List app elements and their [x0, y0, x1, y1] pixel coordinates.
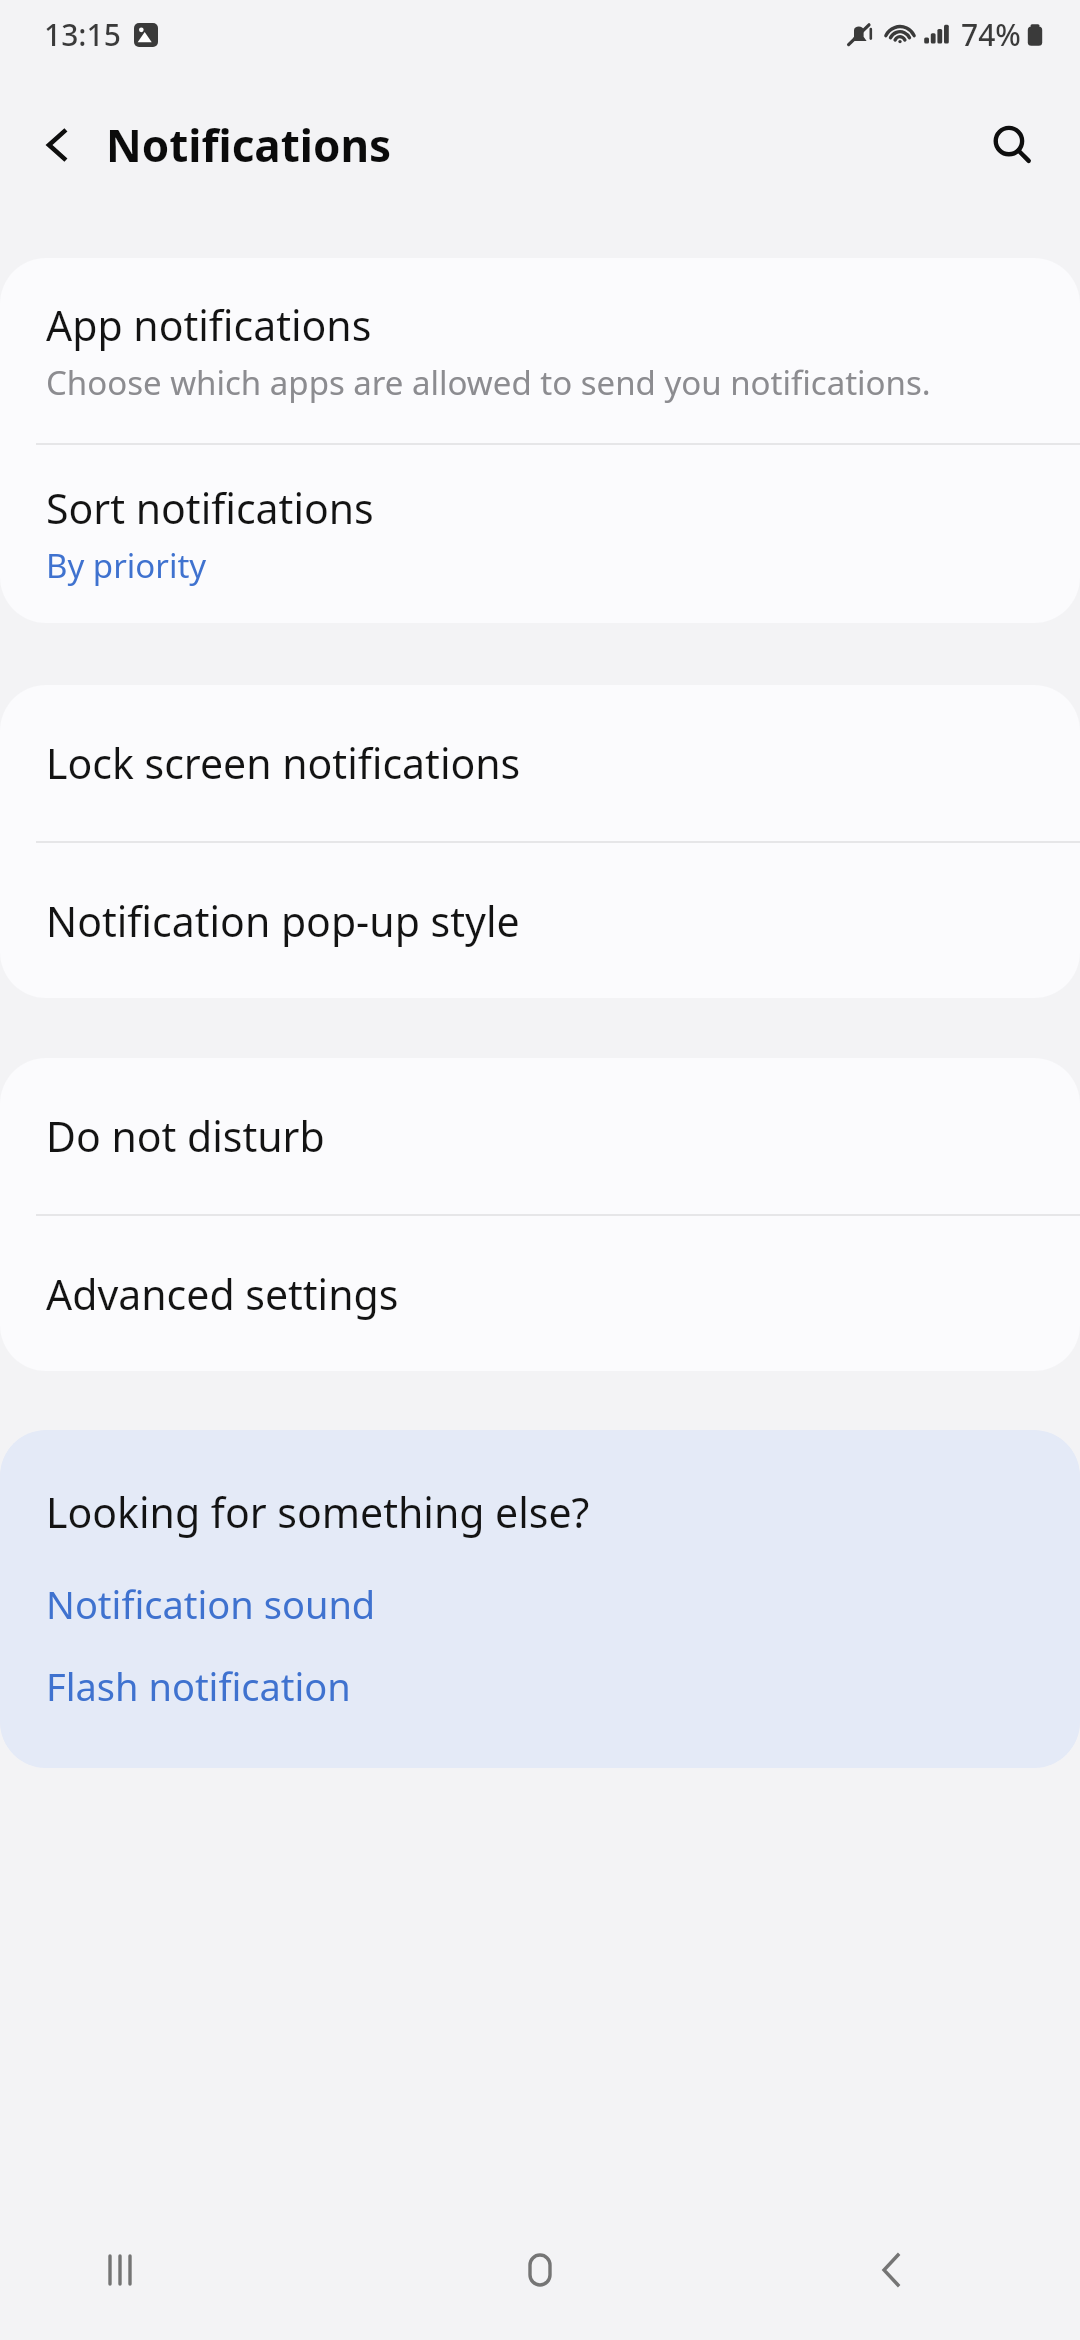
staticText: Lock screen notifications [46, 735, 521, 791]
staticText: 74% [961, 14, 1021, 55]
staticText: Advanced settings [46, 1266, 399, 1322]
button[interactable]: Notification sound [46, 1578, 1040, 1630]
staticText: 13:15 [44, 14, 121, 55]
staticText: Sort notifications [46, 480, 374, 536]
button[interactable]: Advanced settings [0, 1216, 1080, 1371]
staticText: Notifications [106, 115, 392, 175]
staticText: By priority [46, 543, 207, 588]
button[interactable]: App notifications [0, 258, 1080, 443]
button[interactable]: Recents [72, 2222, 168, 2318]
staticText: Choose which apps are allowed to send yo… [46, 360, 931, 405]
button[interactable]: Search [976, 109, 1048, 181]
button[interactable]: Home [492, 2222, 588, 2318]
staticText: Do not disturb [46, 1108, 325, 1164]
staticText: Notification pop-up style [46, 893, 520, 949]
staticText: App notifications [46, 297, 372, 353]
button[interactable]: Lock screen notifications [0, 685, 1080, 841]
staticText: Looking for something else? [46, 1484, 590, 1540]
button[interactable]: Back [844, 2222, 940, 2318]
staticText: Notification sound [46, 1578, 376, 1630]
button[interactable]: Back [26, 114, 88, 176]
button[interactable]: Notification pop-up style [0, 843, 1080, 998]
button[interactable]: Flash notification [46, 1660, 1040, 1712]
button[interactable]: Do not disturb [0, 1058, 1080, 1214]
staticText: Flash notification [46, 1660, 351, 1712]
button[interactable]: Sort notifications [0, 445, 1080, 623]
